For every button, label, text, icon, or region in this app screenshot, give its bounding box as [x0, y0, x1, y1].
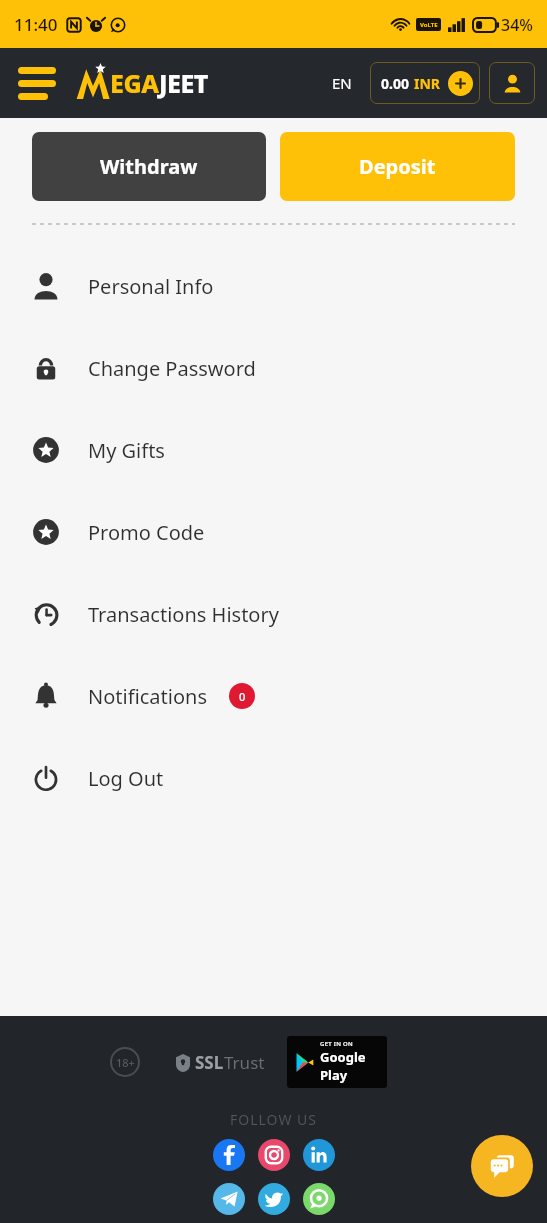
button[interactable]: facebook: [213, 1139, 245, 1171]
button[interactable]: SSL: [176, 1051, 265, 1074]
button[interactable]: Account: [489, 62, 535, 104]
button[interactable]: Log Out: [0, 737, 547, 819]
staticText: Withdraw: [100, 153, 198, 180]
button[interactable]: Transactions History: [0, 573, 547, 655]
button[interactable]: telegram: [213, 1183, 245, 1215]
button[interactable]: Withdraw: [32, 132, 266, 201]
button[interactable]: EN: [328, 73, 356, 93]
button[interactable]: 0.00: [370, 62, 480, 104]
button[interactable]: Promo Code: [0, 491, 547, 573]
button[interactable]: 18 plus: [110, 1047, 140, 1077]
staticText: Notifications: [88, 683, 207, 710]
button[interactable]: Notifications: [0, 655, 547, 737]
staticText: EGA: [110, 66, 159, 100]
staticText: 0.00: [381, 74, 409, 93]
button[interactable]: whatsapp: [303, 1183, 335, 1215]
staticText: Log Out: [88, 765, 164, 792]
button[interactable]: Open menu: [14, 60, 60, 106]
button[interactable]: My Gifts: [0, 409, 547, 491]
staticText: 34%: [501, 14, 533, 36]
staticText: 18+: [116, 1055, 135, 1070]
staticText: INR: [414, 74, 441, 93]
staticText: Change Password: [88, 355, 256, 382]
button[interactable]: Change Password: [0, 327, 547, 409]
button[interactable]: Chat support: [471, 1135, 533, 1197]
button[interactable]: Deposit: [280, 132, 515, 201]
staticText: Promo Code: [88, 519, 205, 546]
staticText: Personal Info: [88, 273, 214, 300]
button[interactable]: twitter: [258, 1183, 290, 1215]
button[interactable]: Get it on Google Play: [287, 1036, 387, 1088]
staticText: JEET: [159, 66, 208, 100]
staticText: My Gifts: [88, 437, 165, 464]
staticText: Deposit: [359, 153, 436, 180]
button[interactable]: EGA: [76, 64, 208, 102]
staticText: SSL: [195, 1051, 224, 1074]
staticText: Trust: [224, 1051, 265, 1074]
staticText: GET IN ON: [320, 1040, 354, 1048]
staticText: Transactions History: [88, 601, 279, 628]
staticText: Google Play: [320, 1048, 380, 1084]
staticText: 0: [239, 689, 246, 704]
staticText: VoLTE: [420, 21, 438, 29]
button[interactable]: Personal Info: [0, 245, 547, 327]
staticText: FOLLOW US: [230, 1110, 317, 1129]
staticText: 11:40: [14, 13, 58, 36]
button[interactable]: linkedin: [303, 1139, 335, 1171]
staticText: EN: [332, 73, 352, 93]
button[interactable]: instagram: [258, 1139, 290, 1171]
